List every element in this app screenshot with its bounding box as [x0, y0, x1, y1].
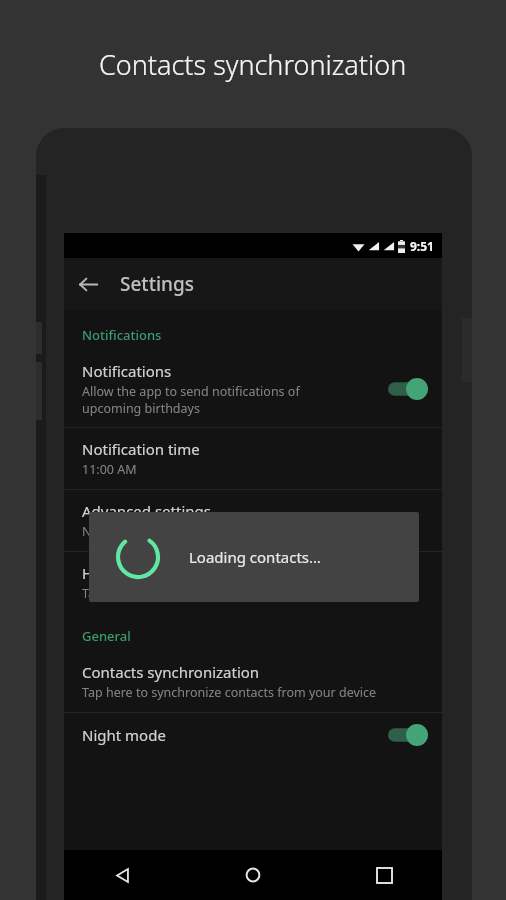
staticText: Contacts synchronization: [82, 662, 260, 682]
staticText: 9:51: [410, 238, 434, 254]
staticText: Notifications: [82, 326, 162, 344]
button[interactable]: Night mode: [64, 713, 442, 757]
staticText: Tap here if you don't receive notificati…: [82, 585, 323, 602]
staticText: Notification options: [82, 523, 198, 540]
staticText: Loading contacts…: [189, 547, 321, 567]
staticText: Contacts synchronization: [99, 46, 407, 83]
button[interactable]: Contacts synchronization: [64, 651, 442, 712]
button[interactable]: Back: [100, 853, 144, 897]
staticText: Help: [82, 563, 115, 583]
button[interactable]: Back: [64, 260, 112, 308]
button[interactable]: Help: [64, 552, 442, 613]
button[interactable]: Advanced settings: [64, 490, 442, 551]
staticText: Advanced settings: [82, 501, 211, 521]
button[interactable]: Recents: [362, 853, 406, 897]
button[interactable]: Notification time: [64, 428, 442, 489]
staticText: Night mode: [82, 725, 166, 745]
staticText: General: [82, 627, 131, 645]
button[interactable]: Notifications: [64, 350, 442, 427]
staticText: Notifications: [82, 361, 172, 381]
button[interactable]: Home: [231, 853, 275, 897]
staticText: 11:00 AM: [82, 461, 137, 478]
button[interactable]: Toggle: [388, 378, 428, 400]
staticText: Allow the app to send notifications of u…: [82, 383, 300, 416]
staticText: Settings: [120, 271, 194, 297]
staticText: Tap here to synchronize contacts from yo…: [82, 684, 377, 701]
button[interactable]: Toggle: [388, 724, 428, 746]
staticText: Notification time: [82, 439, 200, 459]
